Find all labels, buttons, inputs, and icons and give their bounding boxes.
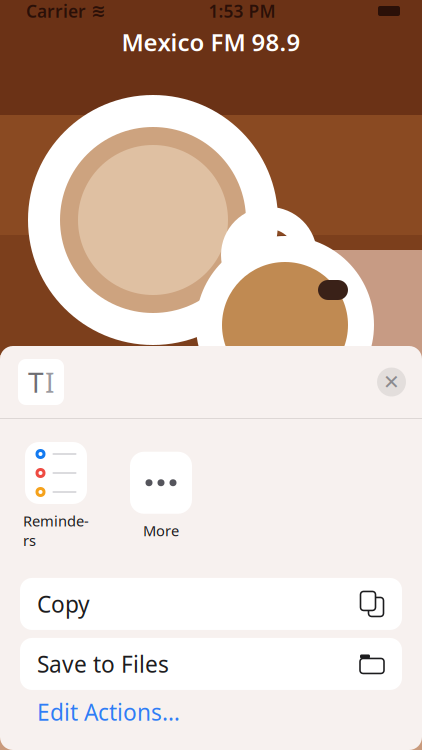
button[interactable]: Reminders bbox=[21, 442, 91, 550]
staticText: 1:53 PM bbox=[208, 0, 275, 22]
staticText: More bbox=[143, 521, 179, 540]
staticText: Carrier bbox=[26, 0, 86, 22]
button[interactable]: Save to Files bbox=[20, 638, 402, 690]
staticText: T bbox=[28, 363, 44, 401]
staticText: Save to Files bbox=[37, 649, 169, 679]
staticText: Edit Actions… bbox=[37, 697, 180, 727]
staticText: Reminders bbox=[23, 511, 89, 550]
staticText: Copy bbox=[37, 589, 90, 619]
staticText: Mexico FM 98.9 bbox=[121, 26, 300, 58]
button[interactable]: Edit Actions… bbox=[0, 690, 422, 734]
staticText: ≋ bbox=[91, 1, 106, 21]
staticText: ✕ bbox=[383, 371, 400, 393]
staticText: I bbox=[45, 363, 54, 401]
button[interactable]: More bbox=[126, 452, 196, 540]
button[interactable]: Copy bbox=[20, 578, 402, 630]
button[interactable]: Close bbox=[377, 367, 406, 396]
